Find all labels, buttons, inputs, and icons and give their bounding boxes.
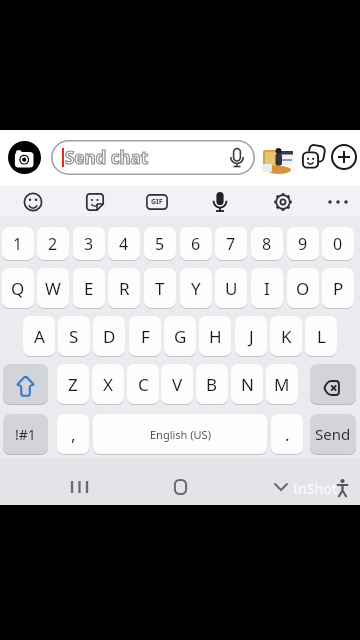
staticText: 0 xyxy=(333,233,343,255)
staticText: . xyxy=(285,423,290,446)
staticText: InShot xyxy=(293,479,338,498)
staticText: D xyxy=(103,325,116,348)
staticText: X xyxy=(103,373,113,396)
staticText: W xyxy=(45,277,61,300)
staticText: Send chat xyxy=(65,146,149,169)
staticText: G xyxy=(174,325,187,348)
staticText: H xyxy=(209,325,222,348)
staticText: 4 xyxy=(119,233,129,255)
staticText: 8 xyxy=(262,233,272,255)
staticText: C xyxy=(138,373,149,396)
staticText: , xyxy=(71,423,76,446)
staticText: F xyxy=(141,325,150,348)
staticText: N xyxy=(241,373,254,396)
staticText: 1 xyxy=(13,233,23,255)
staticText: E xyxy=(84,277,94,300)
staticText: Send xyxy=(315,424,351,444)
staticText: 9 xyxy=(298,233,308,255)
staticText: M xyxy=(274,373,290,396)
staticText: A xyxy=(34,325,45,348)
staticText: I xyxy=(264,277,270,300)
staticText: K xyxy=(281,325,292,348)
staticText: Z xyxy=(68,373,78,396)
staticText: S xyxy=(69,325,79,348)
staticText: J xyxy=(249,325,254,348)
staticText: T xyxy=(155,277,165,300)
staticText: GIF xyxy=(151,197,163,207)
staticText: V xyxy=(172,373,183,396)
staticText: !#1 xyxy=(15,425,36,444)
staticText: 5 xyxy=(155,233,165,255)
staticText: O xyxy=(296,277,310,300)
staticText: English (US) xyxy=(150,427,211,442)
staticText: L xyxy=(317,325,326,348)
staticText: 7 xyxy=(226,233,236,255)
staticText: R xyxy=(119,277,130,300)
staticText: U xyxy=(225,277,238,300)
staticText: 2 xyxy=(48,233,58,255)
staticText: P xyxy=(333,277,344,300)
staticText: 3 xyxy=(84,233,94,255)
staticText: 6 xyxy=(191,233,201,255)
staticText: Q xyxy=(11,277,25,300)
staticText: B xyxy=(206,373,218,396)
staticText: Y xyxy=(191,277,201,300)
